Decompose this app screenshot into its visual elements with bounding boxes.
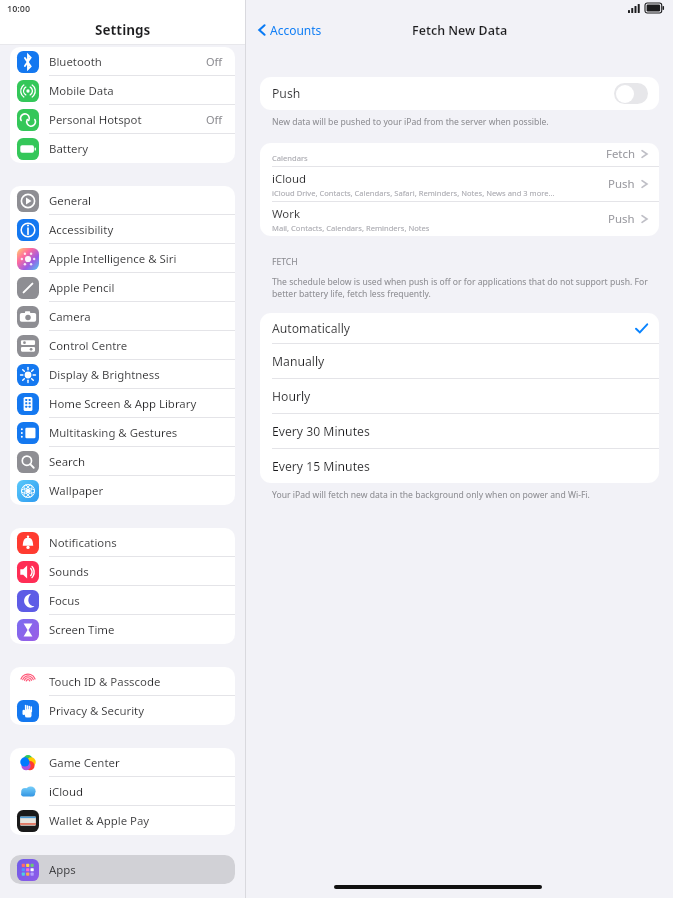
staticText: Mobile Data (49, 83, 114, 99)
button[interactable]: Sounds (10, 557, 235, 586)
staticText: Apps (49, 862, 76, 878)
button[interactable]: Push toggle (614, 83, 648, 104)
staticText: Every 30 Minutes (272, 423, 648, 440)
button[interactable]: Hourly (260, 379, 659, 413)
staticText: Home Screen & App Library (49, 396, 197, 412)
staticText: Search (49, 454, 86, 470)
button[interactable]: Apps (10, 855, 235, 884)
staticText: Control Centre (49, 338, 128, 354)
staticText: Sounds (49, 564, 89, 580)
button[interactable]: Apple Pencil (10, 273, 235, 302)
staticText: Push (272, 85, 614, 102)
staticText: Display & Brightness (49, 367, 160, 383)
staticText: Off (206, 54, 223, 69)
staticText: Touch ID & Passcode (49, 674, 161, 690)
button[interactable]: Home Screen & App Library (10, 389, 235, 418)
staticText: Manually (272, 353, 648, 370)
button[interactable]: General (10, 186, 235, 215)
staticText: Work (272, 206, 301, 222)
staticText: 10:00 (7, 2, 31, 14)
button[interactable]: Search (10, 447, 235, 476)
button[interactable]: Focus (10, 586, 235, 615)
staticText: Notifications (49, 535, 117, 551)
button[interactable]: Privacy & Security (10, 696, 235, 725)
staticText: Bluetooth (49, 54, 102, 70)
staticText: Privacy & Security (49, 703, 144, 719)
button[interactable]: Notifications (10, 528, 235, 557)
staticText: Personal Hotspot (49, 112, 142, 128)
staticText: Multitasking & Gestures (49, 425, 178, 441)
staticText: Battery (49, 141, 88, 157)
staticText: Apple Pencil (49, 280, 115, 296)
staticText: FETCH (272, 256, 298, 268)
staticText: Accounts (270, 22, 322, 38)
staticText: iCloud (49, 784, 84, 800)
button[interactable]: Multitasking & Gestures (10, 418, 235, 447)
staticText: Camera (49, 309, 91, 325)
button[interactable]: Personal Hotspot (10, 105, 235, 134)
staticText: Accessibility (49, 222, 114, 238)
button[interactable]: Accessibility (10, 215, 235, 244)
button[interactable]: Automatically (260, 313, 659, 343)
staticText: Your iPad will fetch new data in the bac… (272, 489, 590, 501)
button[interactable]: Wallpaper (10, 476, 235, 505)
staticText: Every 15 Minutes (272, 458, 648, 475)
button[interactable]: Push (260, 77, 659, 110)
button[interactable]: Control Centre (10, 331, 235, 360)
button[interactable]: Camera (10, 302, 235, 331)
staticText: iCloud (272, 171, 307, 187)
button[interactable]: Bluetooth (10, 47, 235, 76)
button[interactable]: Apple Intelligence & Siri (10, 244, 235, 273)
button[interactable]: Accounts (256, 20, 324, 40)
staticText: Calendars (272, 153, 308, 163)
staticText: Push (608, 211, 635, 227)
staticText: Automatically (272, 320, 635, 337)
button[interactable]: Display & Brightness (10, 360, 235, 389)
button[interactable]: Touch ID & Passcode (10, 667, 235, 696)
button[interactable]: Screen Time (10, 615, 235, 644)
button[interactable]: iCloud (10, 777, 235, 806)
staticText: Wallpaper (49, 483, 104, 499)
staticText: Off (206, 112, 223, 127)
button[interactable]: Battery (10, 134, 235, 163)
staticText: The schedule below is used when push is … (272, 276, 655, 300)
staticText: Screen Time (49, 622, 115, 638)
button[interactable]: Every 30 Minutes (260, 414, 659, 448)
staticText: Focus (49, 593, 80, 609)
staticText: Apple Intelligence & Siri (49, 251, 177, 267)
staticText: General (49, 193, 91, 209)
staticText: New data will be pushed to your iPad fro… (272, 116, 549, 128)
button[interactable]: Work (260, 202, 659, 236)
staticText: Settings (95, 21, 151, 39)
button[interactable]: Every 15 Minutes (260, 449, 659, 483)
staticText: Fetch (606, 146, 635, 162)
button[interactable]: iCloud (260, 167, 659, 201)
button[interactable]: Wallet & Apple Pay (10, 806, 235, 835)
staticText: Mail, Contacts, Calendars, Reminders, No… (272, 223, 430, 233)
button[interactable]: Calendars (260, 143, 659, 166)
staticText: Push (608, 176, 635, 192)
staticText: Fetch New Data (412, 22, 508, 39)
staticText: Wallet & Apple Pay (49, 813, 150, 829)
staticText: iCloud Drive, Contacts, Calendars, Safar… (272, 188, 555, 198)
staticText: Game Center (49, 755, 120, 771)
button[interactable]: Mobile Data (10, 76, 235, 105)
staticText: Hourly (272, 388, 648, 405)
button[interactable]: Manually (260, 344, 659, 378)
button[interactable]: Game Center (10, 748, 235, 777)
